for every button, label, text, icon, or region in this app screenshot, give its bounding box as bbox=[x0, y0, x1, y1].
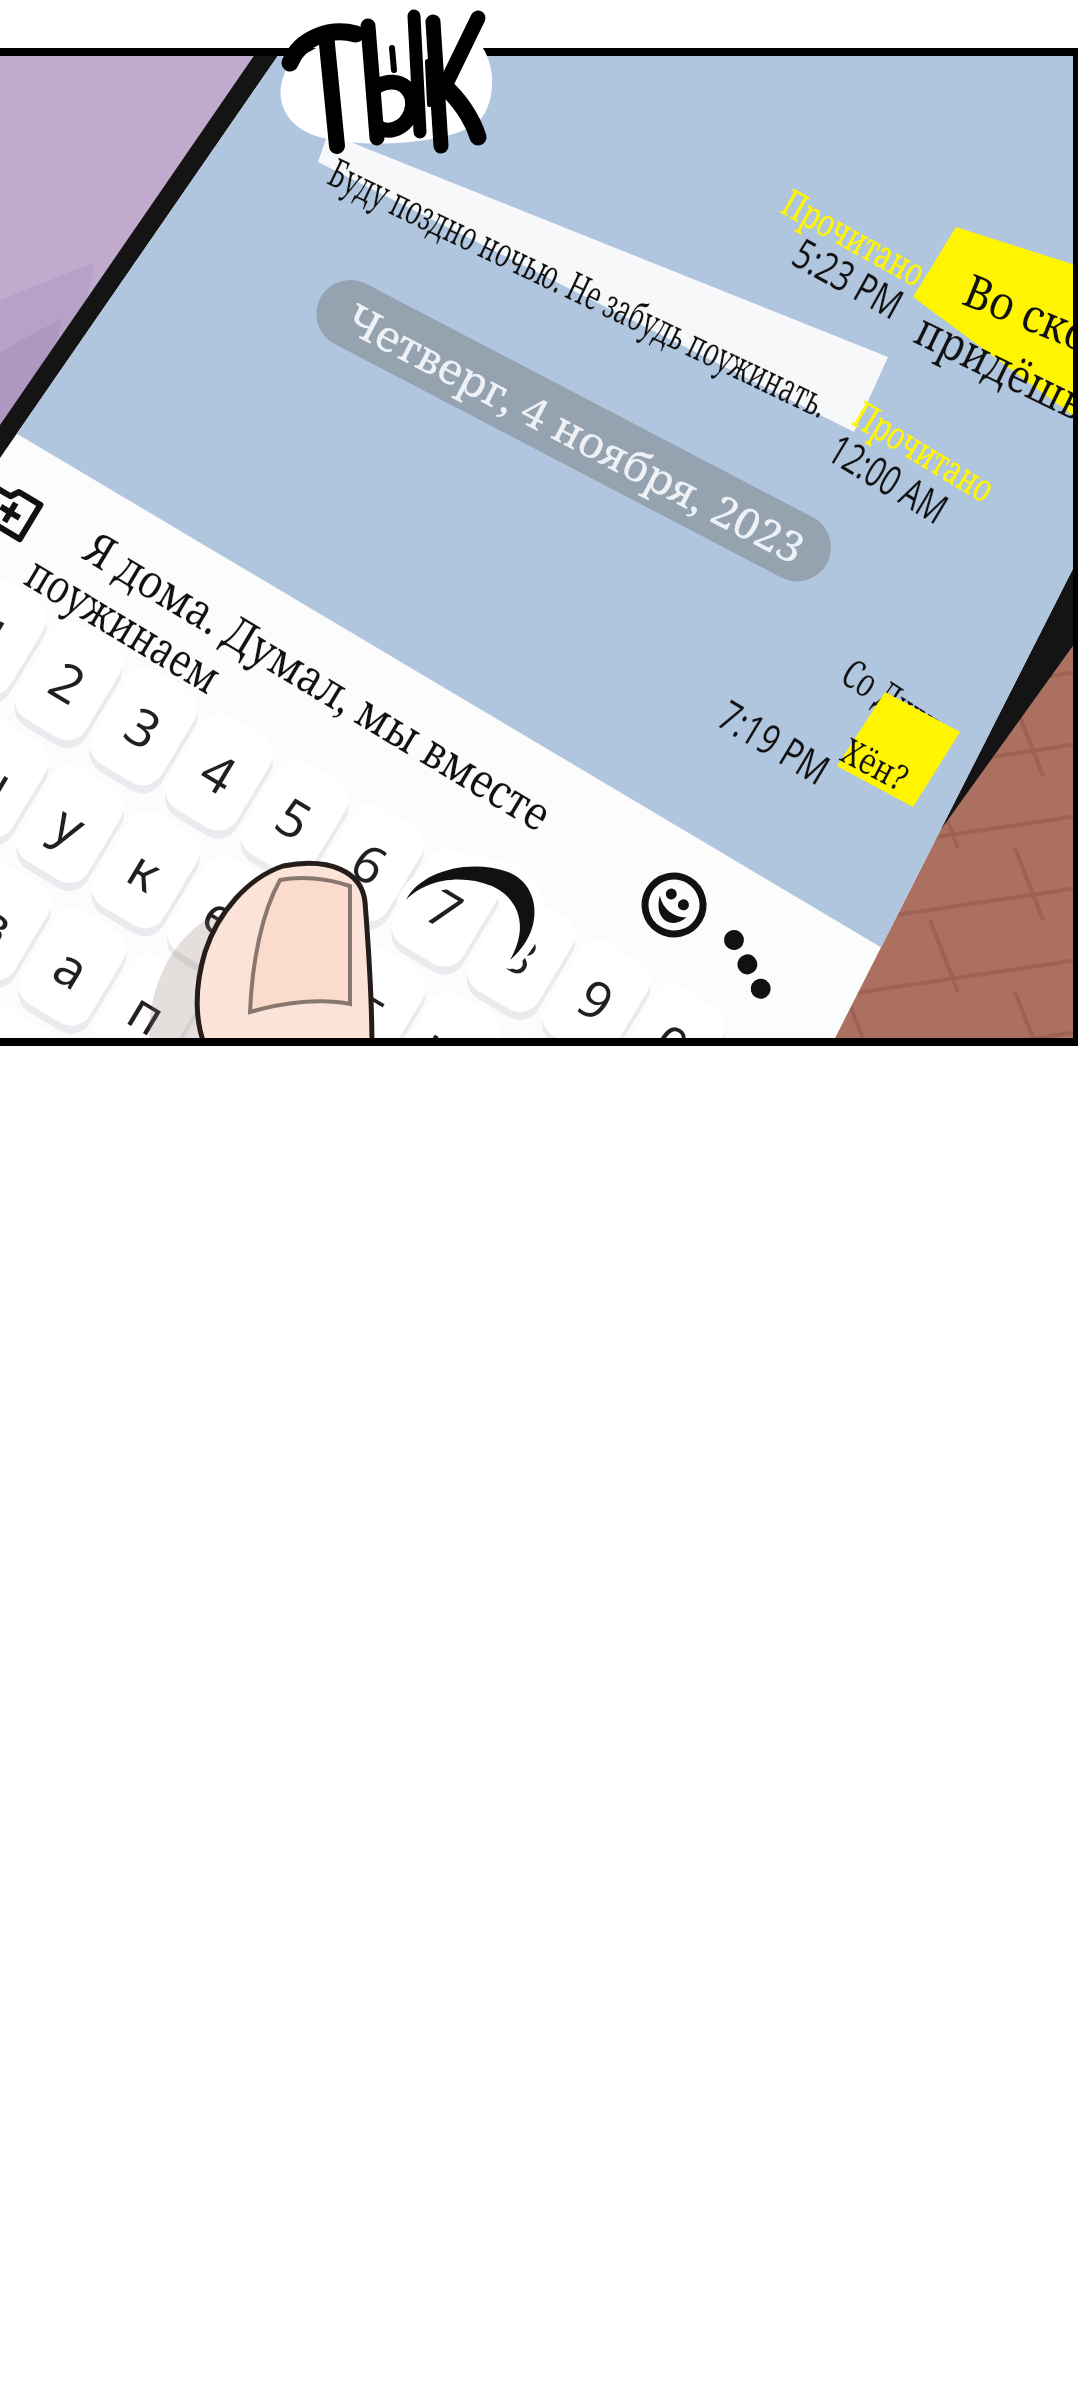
button[interactable]: Comic panel: tapping a phone chat screen bbox=[0, 0, 1078, 2406]
